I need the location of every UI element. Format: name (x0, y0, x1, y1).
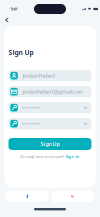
staticText: 9:41 (10, 6, 17, 12)
button[interactable]: jordanhebert@gmail.com (8, 86, 91, 97)
button[interactable]: Show password (82, 121, 89, 127)
staticText: Jordan Hebert (22, 72, 55, 79)
button[interactable]: Sign Up (8, 138, 91, 150)
button[interactable]: Jordan Hebert (8, 70, 91, 81)
button[interactable] (8, 118, 91, 129)
button[interactable]: Already have an account? (8, 150, 91, 163)
staticText: Sign Up (8, 48, 33, 57)
staticText: Sign Up (40, 140, 59, 148)
staticText: jordanhebert@gmail.com (22, 88, 83, 95)
staticText: Already have an account? (20, 154, 64, 159)
button[interactable]: Show password (82, 105, 89, 111)
staticText: Sign in (66, 154, 80, 159)
button[interactable] (8, 102, 91, 113)
button[interactable]: Continue with Google (52, 191, 94, 202)
button[interactable]: Back (3, 16, 11, 24)
button[interactable]: Continue with Facebook (6, 191, 48, 202)
